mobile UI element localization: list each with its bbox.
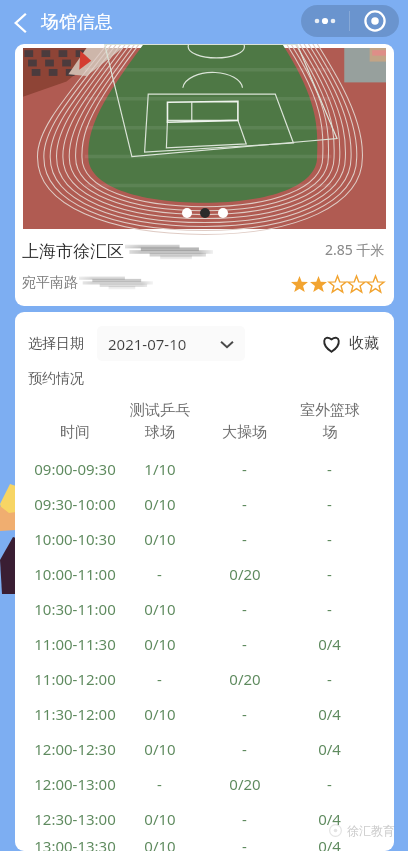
staticText: 10:00-11:00 (34, 564, 116, 584)
staticText: 0/20 (229, 669, 261, 689)
staticText: - (327, 774, 332, 794)
staticText: - (242, 459, 247, 479)
staticText: 0/20 (229, 564, 261, 584)
staticText: - (157, 564, 162, 584)
staticText: 09:30-10:00 (34, 494, 116, 514)
staticText: 12:00-12:30 (34, 739, 116, 759)
button[interactable]: 10:30-11:00 (15, 591, 394, 626)
staticText: 0/10 (144, 599, 176, 619)
button[interactable]: 09:00-09:30 (15, 451, 394, 486)
staticText: 09:00-09:30 (34, 459, 116, 479)
button[interactable]: 2021-07-10 (97, 326, 245, 361)
staticText: 0/10 (144, 494, 176, 514)
staticText: 0/4 (318, 809, 341, 829)
staticText: 2021-07-10 (108, 334, 187, 354)
staticText: 11:00-12:00 (34, 669, 116, 689)
button[interactable]: 收藏 (320, 332, 385, 355)
button[interactable]: 11:00-12:00 (15, 661, 394, 696)
staticText: 10:30-11:00 (34, 599, 116, 619)
staticText: - (327, 669, 332, 689)
staticText: - (242, 529, 247, 549)
staticText: 0/4 (318, 836, 341, 851)
button[interactable]: 12:00-13:00 (15, 766, 394, 801)
button[interactable]: 12:30-13:00 (15, 801, 394, 836)
staticText: 选择日期 (28, 335, 84, 353)
staticText: 0/10 (144, 836, 176, 851)
staticText: 测试乒乓 球场 (130, 401, 190, 442)
staticText: - (327, 459, 332, 479)
staticText: - (157, 669, 162, 689)
staticText: 宛平南路 (22, 274, 78, 292)
staticText: 1/10 (144, 459, 176, 479)
staticText: 0/10 (144, 739, 176, 759)
staticText: 0/10 (144, 809, 176, 829)
staticText: - (327, 564, 332, 584)
staticText: 0/4 (318, 704, 341, 724)
button[interactable]: 09:30-10:00 (15, 486, 394, 521)
staticText: 大操场 (222, 423, 267, 442)
staticText: 场馆信息 (41, 11, 113, 34)
staticText: 上海市徐汇区 (22, 241, 124, 262)
staticText: 0/20 (229, 774, 261, 794)
staticText: 11:30-12:00 (34, 704, 116, 724)
staticText: - (242, 836, 247, 851)
staticText: - (242, 494, 247, 514)
staticText: 预约情况 (28, 370, 84, 388)
button[interactable]: 10:00-10:30 (15, 521, 394, 556)
staticText: 0/10 (144, 704, 176, 724)
button[interactable]: 10:00-11:00 (15, 556, 394, 591)
staticText: 时间 (60, 423, 90, 442)
staticText: - (242, 704, 247, 724)
button[interactable]: 13:00-13:30 (15, 836, 394, 851)
button[interactable]: Back (0, 2, 41, 43)
staticText: - (327, 529, 332, 549)
staticText: - (157, 774, 162, 794)
staticText: 0/4 (318, 634, 341, 654)
staticText: 0/10 (144, 634, 176, 654)
staticText: 0/10 (144, 529, 176, 549)
staticText: 0/4 (318, 739, 341, 759)
staticText: - (242, 599, 247, 619)
staticText: - (327, 494, 332, 514)
button[interactable]: More menu (301, 5, 399, 37)
staticText: 10:00-10:30 (34, 529, 116, 549)
button[interactable]: 11:00-11:30 (15, 626, 394, 661)
staticText: - (242, 739, 247, 759)
staticText: - (327, 599, 332, 619)
staticText: 11:00-11:30 (34, 634, 116, 654)
staticText: - (242, 634, 247, 654)
staticText: 13:00-13:30 (34, 836, 116, 851)
staticText: - (242, 809, 247, 829)
staticText: 2.85 千米 (325, 240, 385, 259)
staticText: 12:00-13:00 (34, 774, 116, 794)
staticText: 室外篮球 场 (300, 401, 360, 442)
staticText: 收藏 (349, 334, 379, 353)
staticText: 12:30-13:00 (34, 809, 116, 829)
button[interactable]: 11:30-12:00 (15, 696, 394, 731)
staticText: 徐汇教育 (347, 823, 395, 838)
button[interactable]: 12:00-12:30 (15, 731, 394, 766)
